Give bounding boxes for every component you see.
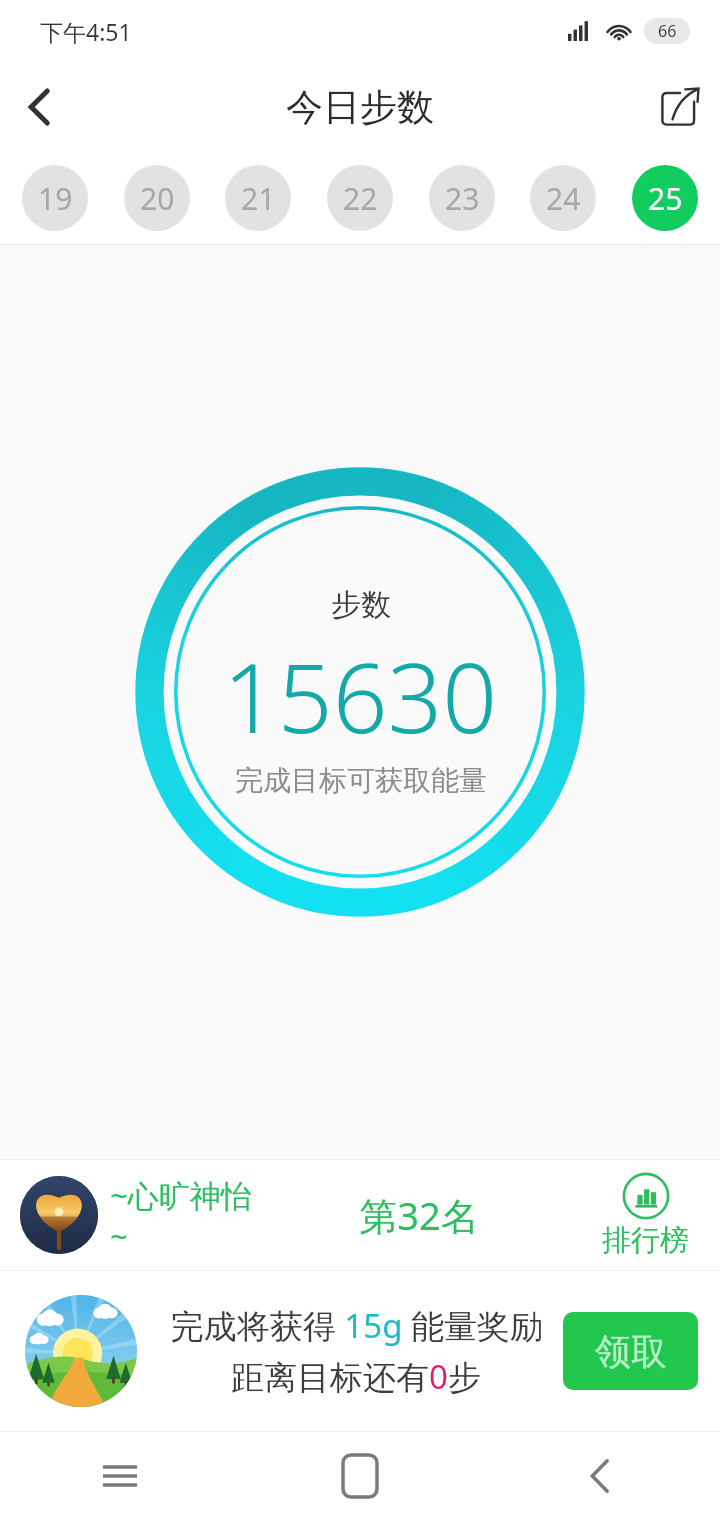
button[interactable]: Share — [640, 67, 720, 147]
staticText: 22 — [343, 178, 378, 219]
button[interactable]: 排行榜 — [583, 1160, 708, 1270]
staticText: 23 — [445, 178, 480, 219]
staticText: 下午4:51 — [40, 16, 132, 47]
staticText: 21 — [241, 178, 276, 219]
staticText: 第32名 — [255, 1189, 583, 1241]
staticText: 领取 — [595, 1329, 667, 1374]
button[interactable]: 23 — [429, 165, 495, 231]
staticText: 19 — [38, 178, 73, 219]
button[interactable]: 24 — [530, 165, 596, 231]
staticText: 66 — [658, 20, 677, 42]
staticText: ~心旷神怡~ — [110, 1174, 255, 1257]
staticText: 完成目标可获取能量 — [235, 763, 487, 798]
staticText: 25 — [648, 178, 683, 219]
button[interactable]: 20 — [124, 165, 190, 231]
staticText: 距离目标还有0步 — [231, 1354, 481, 1399]
button[interactable]: 21 — [225, 165, 291, 231]
staticText: 排行榜 — [602, 1222, 689, 1259]
button[interactable]: 19 — [22, 165, 88, 231]
staticText: 24 — [546, 178, 581, 219]
staticText: 20 — [140, 178, 175, 219]
button[interactable]: 22 — [327, 165, 393, 231]
button[interactable]: ~心旷神怡~ — [0, 1160, 720, 1270]
button[interactable]: Recent apps — [0, 1432, 240, 1520]
staticText: 15630 — [223, 630, 498, 761]
staticText: 完成将获得 15g 能量奖励 — [170, 1303, 543, 1348]
button[interactable]: 25 — [632, 165, 698, 231]
button[interactable]: Back — [480, 1432, 720, 1520]
button[interactable]: 领取 — [563, 1312, 698, 1390]
staticText: 步数 — [331, 586, 391, 624]
button[interactable]: Back — [0, 67, 80, 147]
button[interactable]: Home — [240, 1432, 480, 1520]
staticText: 今日步数 — [286, 84, 434, 131]
